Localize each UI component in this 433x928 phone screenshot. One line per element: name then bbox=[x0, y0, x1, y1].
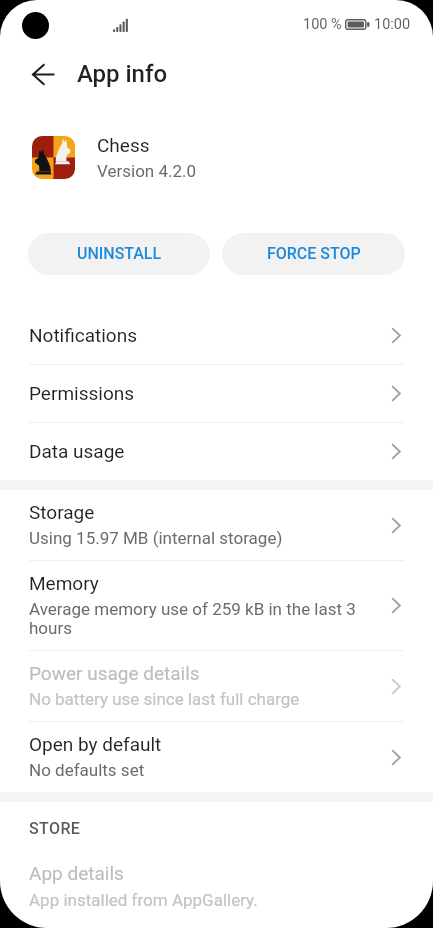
staticText: Power usage details bbox=[29, 664, 200, 684]
button[interactable]: Data usage bbox=[0, 423, 433, 480]
staticText: App installed from AppGallery. bbox=[29, 891, 258, 910]
button[interactable]: Storage bbox=[0, 490, 433, 560]
button[interactable]: Notifications bbox=[0, 307, 433, 364]
button[interactable]: Memory bbox=[0, 561, 433, 650]
staticText: Using 15.97 MB (internal storage) bbox=[29, 529, 283, 548]
staticText: 100 % bbox=[303, 15, 342, 33]
staticText: 10:00 bbox=[374, 15, 411, 33]
staticText: Storage bbox=[29, 503, 95, 523]
staticText: Memory bbox=[29, 574, 99, 594]
staticText: Data usage bbox=[29, 442, 391, 462]
staticText: No battery use since last full charge bbox=[29, 690, 300, 709]
staticText: App info bbox=[77, 61, 168, 87]
staticText: Average memory use of 259 kB in the last… bbox=[29, 600, 369, 638]
staticText: FORCE STOP bbox=[267, 245, 361, 263]
staticText: Notifications bbox=[29, 326, 391, 346]
staticText: UNINSTALL bbox=[77, 245, 162, 263]
staticText: Permissions bbox=[29, 384, 391, 404]
staticText: App details bbox=[29, 864, 124, 884]
staticText: No defaults set bbox=[29, 761, 145, 780]
staticText: Open by default bbox=[29, 735, 162, 755]
staticText: Version 4.2.0 bbox=[97, 162, 197, 181]
staticText: STORE bbox=[29, 820, 81, 838]
button[interactable]: UNINSTALL bbox=[28, 233, 210, 275]
staticText: Chess bbox=[97, 136, 150, 156]
button[interactable]: Permissions bbox=[0, 365, 433, 422]
button[interactable]: Back bbox=[19, 50, 67, 98]
button[interactable]: Open by default bbox=[0, 722, 433, 792]
button[interactable]: FORCE STOP bbox=[222, 233, 405, 275]
button[interactable]: Power usage details bbox=[0, 651, 433, 721]
